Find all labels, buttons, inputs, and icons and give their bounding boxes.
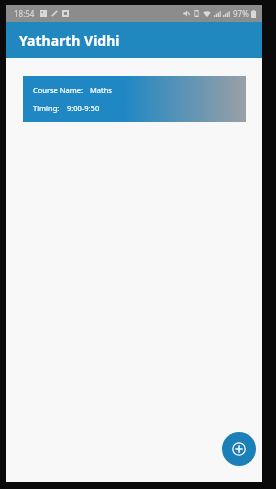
button[interactable]: Course Name: [23, 76, 246, 122]
button[interactable]: Add course [222, 432, 256, 466]
staticText: 9:00-9:50 [67, 103, 100, 113]
staticText: Yatharth Vidhi [19, 31, 120, 50]
staticText: Course Name: [33, 85, 83, 95]
staticText: Maths [90, 85, 112, 95]
staticText: Timing: [33, 103, 60, 113]
button[interactable]: Yatharth Vidhi [6, 22, 262, 58]
staticText: 97% [233, 8, 249, 19]
staticText: 18:54 [14, 8, 35, 19]
